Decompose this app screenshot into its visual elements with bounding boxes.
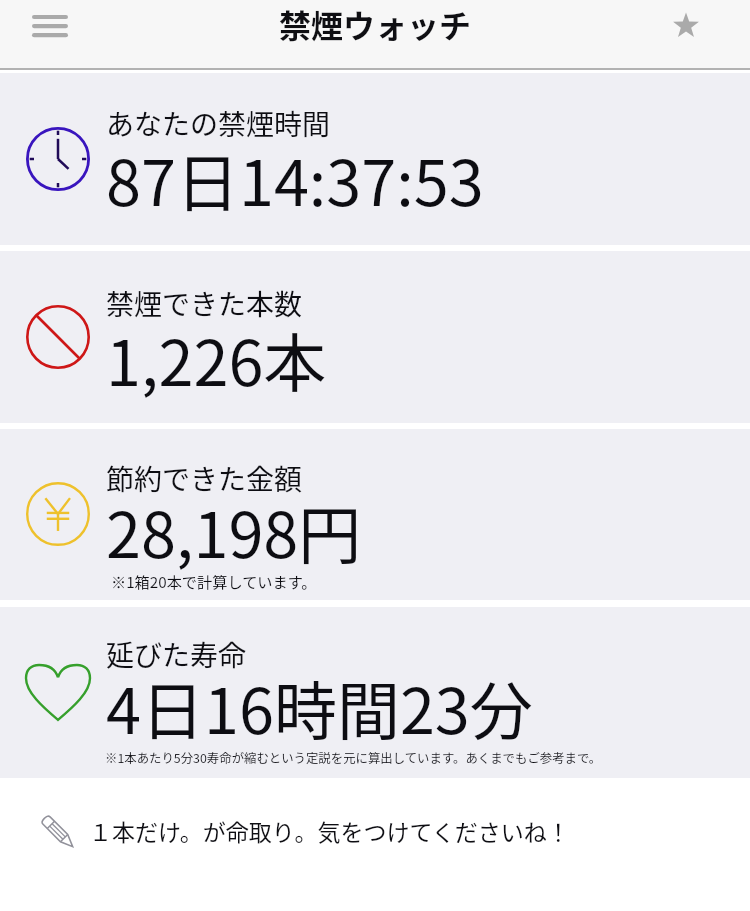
button[interactable]: Favorite	[660, 0, 712, 52]
button[interactable]	[0, 429, 750, 600]
staticText: １本だけ。が命取り。気をつけてくださいね！	[89, 814, 570, 847]
button[interactable]	[0, 607, 750, 778]
staticText: 延びた寿命	[106, 634, 247, 675]
staticText: ※1箱20本で計算しています。	[111, 570, 317, 592]
staticText: 1,226本	[106, 313, 327, 404]
staticText: ※1本あたり5分30寿命が縮むという定説を元に算出しています。あくまでもご参考ま…	[105, 749, 602, 767]
staticText: 節約できた金額	[106, 458, 303, 499]
staticText: 禁煙できた本数	[106, 283, 303, 324]
button[interactable]	[0, 251, 750, 423]
staticText: 4日16時間23分	[106, 661, 533, 752]
staticText: 禁煙ウォッチ	[279, 1, 472, 47]
button[interactable]	[0, 73, 750, 245]
button[interactable]: Open navigation menu	[18, 0, 82, 52]
staticText: 87日14:37:53	[106, 133, 484, 224]
staticText: 28,198円	[106, 485, 362, 576]
button[interactable]	[0, 778, 750, 888]
staticText: あなたの禁煙時間	[106, 103, 331, 144]
